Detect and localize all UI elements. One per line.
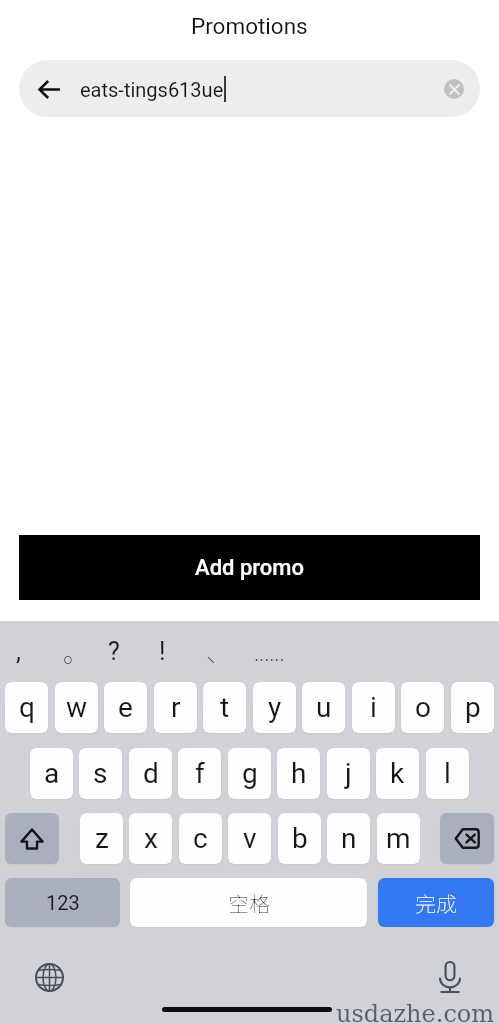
button[interactable]: Back: [27, 67, 71, 111]
staticText: ......: [254, 635, 285, 667]
staticText: n: [341, 822, 357, 855]
staticText: usdazhe.com: [336, 1000, 495, 1024]
staticText: e: [118, 691, 133, 724]
button[interactable]: ,: [0, 630, 42, 672]
staticText: r: [171, 691, 181, 724]
staticText: Promotions: [191, 13, 308, 39]
staticText: q: [19, 691, 35, 724]
staticText: m: [386, 822, 411, 855]
button[interactable]: ......: [245, 630, 293, 672]
staticText: j: [345, 757, 352, 790]
button[interactable]: Add promo: [19, 535, 480, 600]
button[interactable]: 、: [195, 630, 243, 672]
button[interactable]: q: [5, 682, 48, 733]
button[interactable]: 。: [52, 630, 100, 672]
button[interactable]: p: [451, 682, 494, 733]
staticText: Add promo: [195, 555, 304, 581]
button[interactable]: Voice input: [430, 957, 470, 997]
button[interactable]: a: [30, 748, 73, 799]
button[interactable]: u: [302, 682, 345, 733]
button[interactable]: e: [104, 682, 147, 733]
button[interactable]: s: [79, 748, 122, 799]
staticText: g: [242, 757, 258, 790]
button[interactable]: w: [55, 682, 98, 733]
staticText: l: [444, 757, 451, 790]
button[interactable]: 完成: [378, 878, 494, 927]
button[interactable]: [5, 813, 59, 864]
button[interactable]: i: [352, 682, 395, 733]
button[interactable]: y: [253, 682, 296, 733]
staticText: d: [143, 757, 159, 790]
staticText: eats-tings613ue: [80, 78, 224, 101]
staticText: ?: [108, 637, 120, 666]
staticText: i: [370, 691, 377, 724]
staticText: c: [193, 822, 208, 855]
staticText: 。: [63, 633, 89, 669]
button[interactable]: z: [80, 813, 123, 864]
staticText: w: [66, 691, 88, 724]
staticText: v: [243, 822, 257, 855]
staticText: s: [93, 757, 108, 790]
button[interactable]: o: [401, 682, 444, 733]
button[interactable]: n: [327, 813, 370, 864]
staticText: t: [220, 691, 230, 724]
button[interactable]: !: [138, 630, 186, 672]
button[interactable]: 空格: [130, 878, 367, 927]
staticText: u: [316, 691, 332, 724]
button[interactable]: l: [426, 748, 469, 799]
staticText: b: [292, 822, 308, 855]
staticText: ,: [16, 637, 21, 666]
staticText: y: [268, 691, 282, 724]
button[interactable]: v: [228, 813, 271, 864]
button[interactable]: Switch keyboard language: [29, 957, 69, 997]
button[interactable]: [440, 813, 494, 864]
staticText: z: [95, 822, 109, 855]
button[interactable]: d: [129, 748, 172, 799]
staticText: 123: [46, 891, 80, 914]
button[interactable]: r: [154, 682, 197, 733]
button[interactable]: t: [203, 682, 246, 733]
staticText: o: [415, 691, 431, 724]
button[interactable]: c: [179, 813, 222, 864]
button[interactable]: f: [178, 748, 221, 799]
button[interactable]: g: [228, 748, 271, 799]
button[interactable]: h: [277, 748, 320, 799]
staticText: k: [390, 757, 405, 790]
staticText: p: [465, 691, 481, 724]
button[interactable]: m: [377, 813, 420, 864]
staticText: !: [159, 637, 166, 666]
staticText: 完成: [415, 888, 457, 918]
staticText: 空格: [228, 888, 270, 918]
button[interactable]: 123: [5, 878, 120, 927]
staticText: x: [144, 822, 158, 855]
button[interactable]: j: [327, 748, 370, 799]
button[interactable]: ?: [90, 630, 138, 672]
button[interactable]: b: [278, 813, 321, 864]
staticText: h: [291, 757, 307, 790]
staticText: f: [195, 757, 205, 790]
staticText: a: [44, 757, 60, 790]
button[interactable]: k: [376, 748, 419, 799]
staticText: 、: [206, 633, 232, 669]
button[interactable]: Clear text: [444, 79, 464, 99]
button[interactable]: x: [129, 813, 172, 864]
